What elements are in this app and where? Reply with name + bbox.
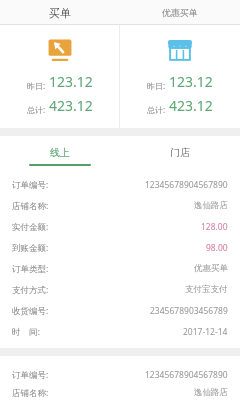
button[interactable]: 订单编号: <box>0 174 240 195</box>
staticText: 到账金额: <box>12 242 49 254</box>
staticText: 总计: <box>27 104 46 115</box>
staticText: 买单 <box>49 6 71 20</box>
button[interactable]: 到账金额: <box>0 237 240 258</box>
staticText: 支付方式: <box>12 284 49 296</box>
button[interactable]: 店铺名称: <box>0 385 240 400</box>
staticText: 优惠买单 <box>162 7 198 18</box>
staticText: 线上 <box>50 146 70 159</box>
staticText: 123.12 <box>169 72 213 91</box>
staticText: 订单类型: <box>12 263 49 275</box>
other: 门店 <box>167 37 193 63</box>
button[interactable]: 门店 <box>120 25 240 128</box>
staticText: 总计: <box>147 104 166 115</box>
button[interactable]: 订单类型: <box>0 258 240 279</box>
staticText: 123.12 <box>49 72 93 91</box>
button[interactable]: 支付方式: <box>0 279 240 300</box>
staticText: 昨日: <box>27 80 46 91</box>
staticText: 128.00 <box>201 221 228 233</box>
staticText: 98.00 <box>206 242 228 254</box>
staticText: 时 间: <box>12 326 41 338</box>
staticText: 逸仙路店 <box>194 200 228 211</box>
button[interactable]: 收货编号: <box>0 300 240 321</box>
staticText: 优惠买单 <box>194 263 228 274</box>
button[interactable]: 门店 <box>120 136 240 168</box>
staticText: 门店 <box>170 146 190 159</box>
button[interactable]: 优惠买单 <box>120 0 240 25</box>
staticText: 423.12 <box>49 96 93 115</box>
staticText: 店铺名称: <box>12 200 49 212</box>
staticText: 实付金额: <box>12 221 49 233</box>
staticText: 423.12 <box>169 96 213 115</box>
staticText: 支付宝支付 <box>185 284 228 295</box>
button[interactable]: 线上 <box>0 25 119 128</box>
staticText: 逸仙路店 <box>194 387 228 398</box>
button[interactable]: 实付金额: <box>0 216 240 237</box>
staticText: 2017-12-14 <box>183 326 228 338</box>
button[interactable]: 时 间: <box>0 321 240 342</box>
button[interactable]: 店铺名称: <box>0 195 240 216</box>
button[interactable]: 订单编号: <box>0 364 240 385</box>
staticText: 12345678904567890 <box>145 179 228 191</box>
staticText: 订单编号: <box>12 179 49 191</box>
staticText: 收货编号: <box>12 305 49 317</box>
staticText: 2345678903456789 <box>150 305 228 317</box>
button[interactable]: 买单 <box>0 0 120 25</box>
staticText: 昨日: <box>147 80 166 91</box>
staticText: 12345678904567890 <box>145 369 228 381</box>
staticText: 订单编号: <box>12 369 49 381</box>
staticText: 店铺名称: <box>12 387 49 399</box>
button[interactable]: 线上 <box>0 136 120 168</box>
other: 线上 <box>47 37 73 63</box>
